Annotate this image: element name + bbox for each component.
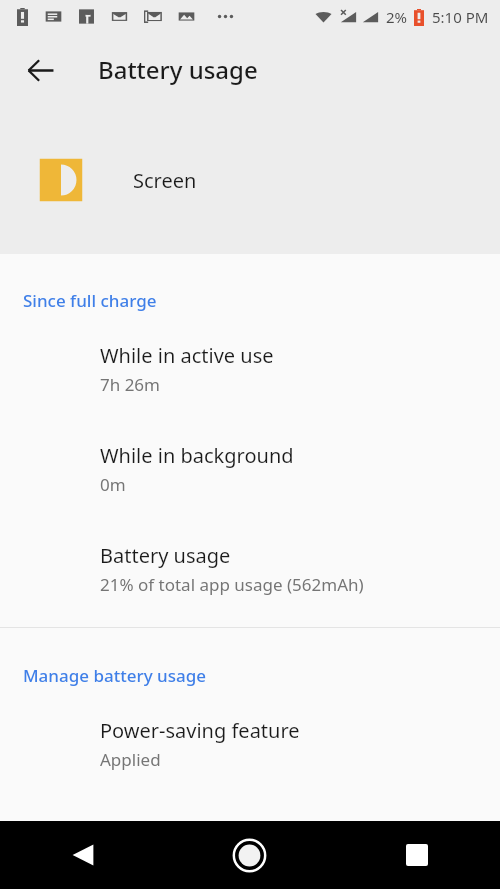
staticText: 7h 26m — [100, 373, 160, 396]
button[interactable]: Back — [0, 821, 166, 889]
staticText: Battery usage — [98, 53, 258, 86]
staticText: Applied — [100, 748, 161, 771]
button[interactable]: Since full charge — [0, 289, 500, 312]
staticText: 5:10 PM — [432, 7, 489, 27]
button[interactable]: Back — [15, 45, 65, 95]
button[interactable]: While in background — [0, 442, 500, 496]
staticText: Manage battery usage — [23, 664, 207, 687]
staticText: 2% — [386, 7, 408, 27]
staticText: Battery usage — [100, 542, 231, 569]
button[interactable]: Manage battery usage — [0, 664, 500, 687]
staticText: Power-saving feature — [100, 717, 300, 744]
staticText: While in active use — [100, 342, 274, 369]
button[interactable]: Screen — [0, 106, 500, 254]
button[interactable]: Battery usage — [0, 542, 500, 596]
staticText: 21% of total app usage (562mAh) — [100, 573, 364, 596]
staticText: Screen — [133, 167, 197, 194]
staticText: 0m — [100, 473, 126, 496]
staticText: While in background — [100, 442, 294, 469]
button[interactable]: Home — [166, 821, 333, 889]
button[interactable]: Power-saving feature — [0, 717, 500, 771]
button[interactable]: Recent apps — [333, 821, 500, 889]
button[interactable]: While in active use — [0, 342, 500, 396]
staticText: Since full charge — [23, 289, 157, 312]
